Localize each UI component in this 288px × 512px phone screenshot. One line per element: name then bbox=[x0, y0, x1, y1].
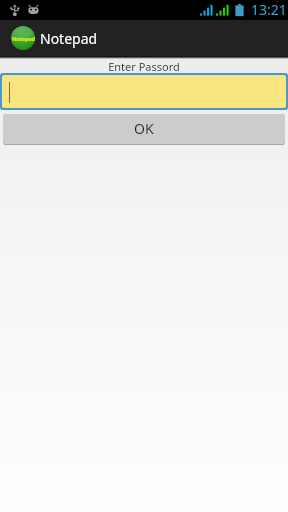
staticText: Notepad bbox=[12, 35, 35, 43]
staticText: OK bbox=[134, 119, 154, 138]
button[interactable]: OK bbox=[3, 114, 285, 144]
staticText: Notepad bbox=[40, 29, 98, 48]
button[interactable]: Notepad home bbox=[5, 20, 41, 56]
button[interactable] bbox=[2, 75, 286, 108]
staticText: 13:21 bbox=[251, 0, 287, 19]
staticText: Enter Passord bbox=[0, 59, 288, 74]
